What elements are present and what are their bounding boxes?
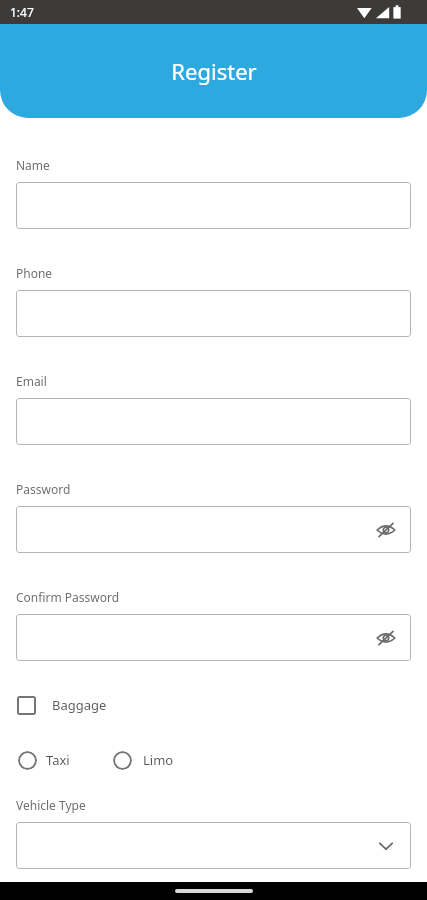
staticText: Continue [177,892,250,900]
button[interactable] [16,398,411,445]
staticText: Confirm Password [16,589,120,605]
staticText: Vehicle Type [16,797,86,813]
staticText: Register [171,56,257,86]
other: Open vehicle type dropdown [375,835,397,857]
button[interactable]: Toggle password visibility [16,614,411,661]
button[interactable]: Baggage [16,690,107,720]
staticText: Email [16,373,47,389]
staticText: Baggage [52,696,107,714]
staticText: Name [16,157,50,173]
staticText: Phone [16,265,53,281]
button[interactable] [16,182,411,229]
staticText: Taxi [46,751,70,769]
button[interactable]: Open vehicle type dropdown [16,822,411,869]
button[interactable]: Continue [22,892,405,900]
staticText: 1:47 [10,4,34,20]
button[interactable]: Toggle password visibility [16,506,411,553]
staticText: Limo [143,751,174,769]
button[interactable] [16,290,411,337]
button[interactable]: Taxi [16,745,70,775]
button[interactable]: Limo [113,745,174,775]
other: Toggle password visibility [375,627,397,649]
other: Toggle password visibility [375,519,397,541]
staticText: Password [16,481,71,497]
